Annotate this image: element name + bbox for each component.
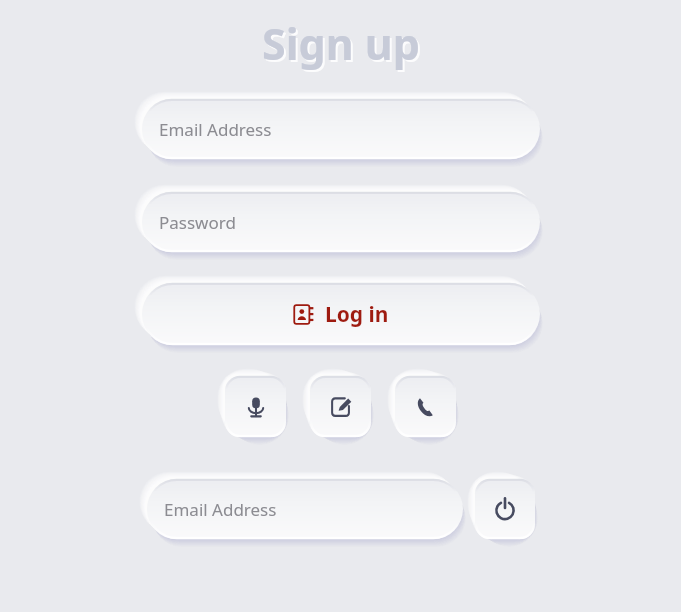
staticText: Email Address [159,118,272,141]
button[interactable]: Call [395,376,456,437]
button[interactable]: Voice input [225,376,286,437]
button[interactable]: Log in [142,283,540,345]
button[interactable]: Email Address [147,479,463,539]
staticText: Email Address [164,498,277,521]
button[interactable]: Password [142,192,540,252]
staticText: Sign up [264,16,422,75]
button[interactable]: Edit [310,376,371,437]
staticText: Password [159,211,236,234]
staticText: Sign up [262,14,420,73]
button[interactable]: Email Address [142,99,540,159]
staticText: Log in [325,300,389,329]
button[interactable]: Power [475,479,535,539]
